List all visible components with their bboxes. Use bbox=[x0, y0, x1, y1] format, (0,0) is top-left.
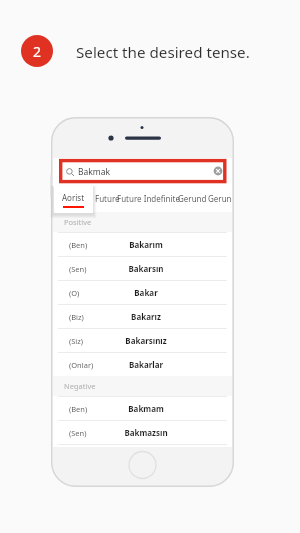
staticText: Aorist bbox=[66, 193, 89, 204]
button[interactable]: (Biz) bbox=[53, 304, 232, 328]
staticText: Gerund bbox=[208, 193, 232, 204]
button[interactable]: Future bbox=[90, 184, 124, 212]
staticText: (Onlar) bbox=[69, 360, 111, 370]
button[interactable]: Gerund bbox=[205, 184, 232, 212]
staticText: (Ben) bbox=[69, 240, 111, 250]
staticText: Bakmak bbox=[78, 166, 111, 178]
staticText: (Ben) bbox=[69, 404, 111, 414]
button[interactable]: Future Indefinite bbox=[115, 184, 181, 212]
button[interactable]: Clear search bbox=[213, 166, 223, 176]
button[interactable]: (Siz) bbox=[53, 328, 232, 352]
button[interactable]: Aorist bbox=[54, 186, 93, 213]
staticText: Aorist bbox=[62, 192, 85, 203]
staticText: (Biz) bbox=[69, 312, 111, 322]
staticText: Select the desired tense. bbox=[76, 42, 250, 63]
staticText: Bakmazsın bbox=[111, 427, 181, 438]
staticText: (Siz) bbox=[69, 336, 111, 346]
staticText: Bakar bbox=[111, 287, 181, 298]
button[interactable]: (Ben) bbox=[53, 232, 232, 256]
button[interactable]: Aorist bbox=[58, 184, 96, 212]
staticText: 2 bbox=[33, 42, 42, 61]
button[interactable]: (Sen) bbox=[53, 256, 232, 280]
staticText: Future Indefinite bbox=[117, 193, 180, 204]
button[interactable]: (Ben) bbox=[53, 396, 232, 420]
staticText: Bakarız bbox=[111, 311, 181, 322]
button[interactable]: Step 2 bbox=[21, 35, 53, 67]
staticText: Future bbox=[95, 193, 120, 204]
button[interactable]: (O) bbox=[53, 280, 232, 304]
staticText: Bakarsın bbox=[111, 263, 181, 274]
staticText: Bakarsınız bbox=[111, 335, 181, 346]
staticText: Negative bbox=[64, 381, 96, 391]
button[interactable]: (Sen) bbox=[53, 420, 232, 444]
button[interactable]: Gerund bbox=[175, 184, 209, 212]
staticText: (Sen) bbox=[69, 428, 111, 438]
staticText: Bakmam bbox=[111, 403, 181, 414]
button[interactable]: Bakmak bbox=[62, 164, 223, 180]
staticText: Positive bbox=[64, 217, 92, 227]
staticText: (Sen) bbox=[69, 264, 111, 274]
button[interactable]: (Onlar) bbox=[53, 352, 232, 376]
staticText: Bakarım bbox=[111, 239, 181, 250]
staticText: (O) bbox=[69, 288, 111, 298]
staticText: Bakarlar bbox=[111, 359, 181, 370]
staticText: Gerund bbox=[178, 193, 207, 204]
